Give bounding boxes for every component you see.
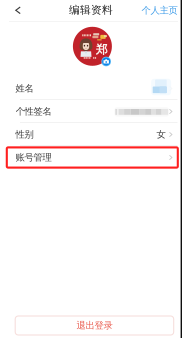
- button[interactable]: 姓名: [0, 77, 182, 100]
- staticText: 个人主页: [141, 5, 177, 16]
- button[interactable]: 个性签名: [0, 100, 182, 123]
- staticText: 账号管理: [15, 152, 51, 163]
- button[interactable]: 个人主页: [138, 1, 180, 20]
- staticText: 个性签名: [15, 106, 51, 117]
- button[interactable]: 退出登录: [15, 316, 174, 335]
- staticText: 退出登录: [76, 320, 112, 331]
- button[interactable]: 性别: [0, 123, 182, 146]
- button[interactable]: 账号管理: [0, 146, 182, 169]
- button[interactable]: Back: [7, 1, 29, 19]
- staticText: 女: [156, 129, 165, 140]
- staticText: 性别: [15, 129, 33, 140]
- staticText: 姓名: [15, 83, 33, 94]
- staticText: 编辑资料: [69, 3, 113, 16]
- staticText: 郑: [96, 42, 108, 57]
